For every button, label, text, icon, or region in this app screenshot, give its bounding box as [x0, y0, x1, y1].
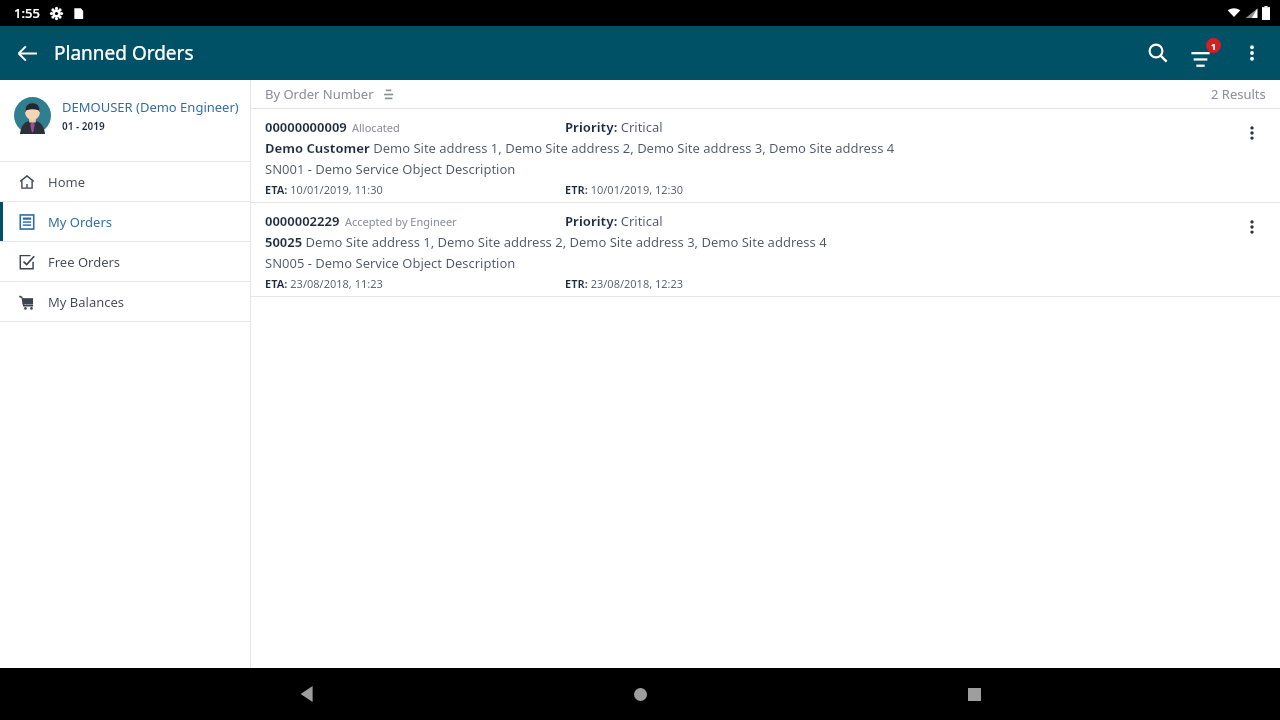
staticText: 0000002229: [265, 212, 340, 230]
staticText: By Order Number: [265, 85, 374, 103]
staticText: 50025 Demo Site address 1, Demo Site add…: [265, 233, 827, 251]
staticText: My Orders: [48, 213, 112, 231]
staticText: Allocated: [352, 120, 400, 135]
button[interactable]: Filter: [1182, 29, 1230, 77]
staticText: My Balances: [48, 293, 125, 311]
button[interactable]: DEMOUSER (Demo Engineer): [14, 80, 250, 150]
staticText: Priority: Critical: [565, 212, 663, 230]
button[interactable]: My Orders: [0, 202, 250, 241]
button[interactable]: Order options: [1232, 207, 1272, 247]
button[interactable]: More options: [1230, 31, 1274, 75]
staticText: 00000000009: [265, 118, 347, 136]
button[interactable]: By Order Number: [265, 85, 395, 103]
button[interactable]: 00000000009: [251, 109, 1280, 202]
staticText: ETR: 10/01/2019, 12:30: [565, 182, 684, 197]
staticText: SN001 - Demo Service Object Description: [265, 160, 516, 178]
staticText: Demo Customer Demo Site address 1, Demo …: [265, 139, 895, 157]
staticText: 01 - 2019: [62, 119, 105, 133]
button[interactable]: 0000002229: [251, 203, 1280, 296]
staticText: Free Orders: [48, 253, 121, 271]
staticText: Accepted by Engineer: [345, 214, 457, 229]
staticText: Priority: Critical: [565, 118, 663, 136]
button[interactable]: Free Orders: [0, 242, 250, 281]
button[interactable]: Back: [0, 26, 54, 80]
button[interactable]: Search: [1134, 29, 1182, 77]
button[interactable]: Back: [280, 668, 334, 720]
button[interactable]: Order options: [1232, 113, 1272, 153]
button[interactable]: Recent apps: [947, 668, 1001, 720]
staticText: 1: [1211, 40, 1217, 52]
staticText: ETA: 10/01/2019, 11:30: [265, 182, 383, 197]
staticText: Home: [48, 173, 85, 191]
staticText: ETA: 23/08/2018, 11:23: [265, 276, 383, 291]
staticText: 1:55: [14, 4, 40, 22]
button[interactable]: Home: [613, 668, 667, 720]
staticText: DEMOUSER (Demo Engineer): [62, 98, 239, 116]
button[interactable]: My Balances: [0, 282, 250, 321]
staticText: SN005 - Demo Service Object Description: [265, 254, 516, 272]
staticText: 2 Results: [1211, 85, 1266, 103]
button[interactable]: Home: [0, 162, 250, 201]
staticText: Planned Orders: [54, 40, 194, 66]
staticText: ETR: 23/08/2018, 12:23: [565, 276, 684, 291]
